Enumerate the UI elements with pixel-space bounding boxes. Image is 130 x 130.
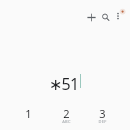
button[interactable]: 1 [9, 106, 48, 130]
button[interactable]: 2 [47, 106, 86, 130]
staticText: ∗51 [49, 73, 79, 95]
staticText: 2 [63, 106, 70, 121]
button[interactable]: Add contact [78, 4, 104, 30]
button[interactable]: More options [105, 4, 130, 30]
staticText: 1 [25, 106, 32, 121]
staticText: ABC [62, 119, 71, 124]
button[interactable]: 3 [83, 106, 122, 130]
staticText: 3 [99, 106, 106, 121]
button[interactable]: Search [92, 4, 118, 30]
staticText: DEF [98, 119, 107, 124]
